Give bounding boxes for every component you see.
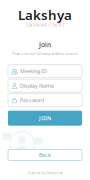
staticText: JOIN bbox=[39, 115, 51, 122]
staticText: Password bbox=[20, 97, 44, 104]
button[interactable]: Display Name bbox=[8, 79, 82, 92]
staticText: Please enter the following details to pr… bbox=[11, 52, 78, 56]
staticText: Back bbox=[39, 151, 51, 158]
staticText: Lakshya bbox=[18, 6, 72, 24]
staticText: Join bbox=[39, 40, 51, 49]
staticText: L E A R N I N G C E N T R E bbox=[26, 24, 63, 27]
button[interactable]: Back bbox=[8, 149, 82, 160]
button[interactable]: Meeting ID bbox=[8, 65, 82, 78]
staticText: Powered by: Dedigeniac bbox=[27, 171, 62, 175]
staticText: Display Name bbox=[20, 82, 54, 89]
button[interactable]: Password bbox=[8, 94, 82, 107]
staticText: Meeting ID bbox=[20, 68, 47, 75]
button[interactable]: JOIN bbox=[8, 111, 82, 126]
